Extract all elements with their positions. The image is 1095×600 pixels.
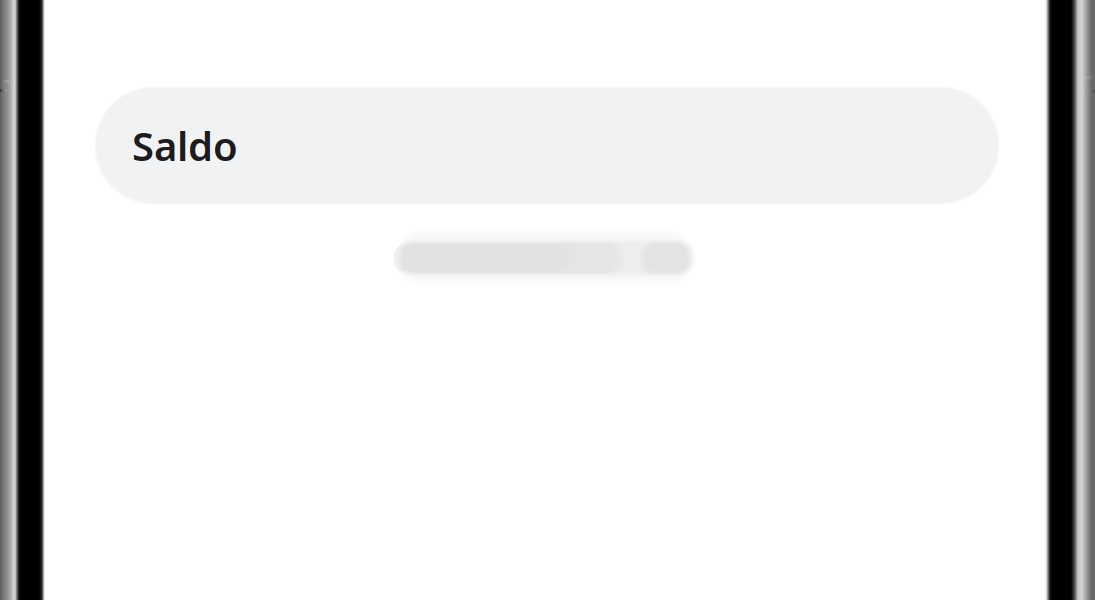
staticText: Saldo [132, 119, 238, 172]
button[interactable]: Saldo [94, 86, 1000, 205]
